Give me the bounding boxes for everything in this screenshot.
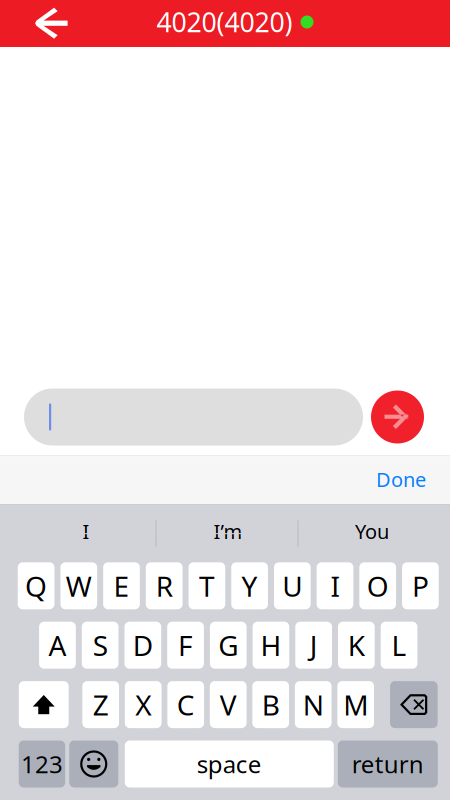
button[interactable]: Q — [18, 562, 54, 609]
button[interactable]: Delete — [390, 681, 438, 728]
button[interactable]: Back — [0, 0, 104, 47]
button[interactable]: U — [274, 562, 311, 609]
staticText: A — [48, 627, 66, 664]
button[interactable]: M — [337, 681, 374, 728]
button[interactable]: X — [125, 681, 161, 728]
button[interactable]: G — [210, 622, 247, 669]
button[interactable]: V — [210, 681, 246, 728]
staticText: 4020(4020) — [156, 4, 292, 40]
staticText: M — [343, 686, 368, 723]
button[interactable]: J — [295, 622, 332, 669]
button[interactable]: S — [82, 622, 118, 669]
button[interactable]: I — [0, 505, 156, 562]
staticText: V — [220, 686, 237, 723]
staticText: N — [303, 686, 324, 723]
button[interactable]: R — [146, 562, 183, 609]
button[interactable]: P — [402, 562, 439, 609]
button[interactable]: F — [167, 622, 204, 669]
staticText: G — [218, 627, 238, 664]
staticText: Q — [25, 567, 47, 604]
staticText: Y — [242, 567, 258, 604]
staticText: I — [82, 518, 89, 544]
staticText: W — [66, 567, 92, 604]
staticText: L — [392, 627, 407, 664]
staticText: I — [330, 567, 339, 604]
button[interactable]: W — [60, 562, 97, 609]
staticText: C — [177, 686, 195, 723]
staticText: D — [133, 627, 153, 664]
staticText: R — [156, 567, 173, 604]
staticText: Done — [376, 466, 426, 492]
button[interactable]: T — [189, 562, 225, 609]
button[interactable]: L — [381, 622, 417, 669]
button[interactable]: I’m — [156, 505, 298, 562]
button[interactable]: Done — [362, 459, 440, 501]
staticText: P — [412, 567, 429, 604]
button[interactable]: 123 — [19, 740, 65, 787]
staticText: O — [367, 567, 389, 604]
staticText: You — [355, 518, 389, 544]
button[interactable]: You — [298, 505, 450, 562]
staticText: E — [113, 567, 129, 604]
button[interactable]: N — [295, 681, 332, 728]
button[interactable]: return — [338, 740, 438, 787]
staticText: Z — [93, 686, 109, 723]
button[interactable]: A — [39, 622, 76, 669]
staticText: return — [352, 748, 424, 780]
staticText: I’m — [213, 518, 242, 544]
staticText: T — [199, 567, 215, 604]
button[interactable]: K — [338, 622, 375, 669]
staticText: B — [262, 686, 280, 723]
button[interactable]: O — [359, 562, 396, 609]
button[interactable]: Emoji — [69, 740, 118, 787]
button[interactable]: Shift — [19, 681, 69, 728]
staticText: S — [93, 627, 108, 664]
button[interactable]: Z — [82, 681, 119, 728]
staticText: space — [197, 748, 262, 780]
staticText: U — [282, 567, 302, 604]
button[interactable]: B — [252, 681, 289, 728]
staticText: 123 — [21, 748, 63, 780]
button[interactable]: H — [253, 622, 289, 669]
button[interactable]: C — [167, 681, 204, 728]
button[interactable]: E — [103, 562, 140, 609]
staticText: H — [260, 627, 281, 664]
staticText: J — [310, 627, 318, 664]
button[interactable]: Send — [371, 390, 424, 443]
staticText: X — [135, 686, 151, 723]
staticText: F — [178, 627, 193, 664]
button[interactable]: space — [125, 740, 334, 787]
staticText: K — [348, 627, 365, 664]
button[interactable]: D — [124, 622, 161, 669]
button[interactable]: Y — [231, 562, 268, 609]
button[interactable]: I — [317, 562, 353, 609]
